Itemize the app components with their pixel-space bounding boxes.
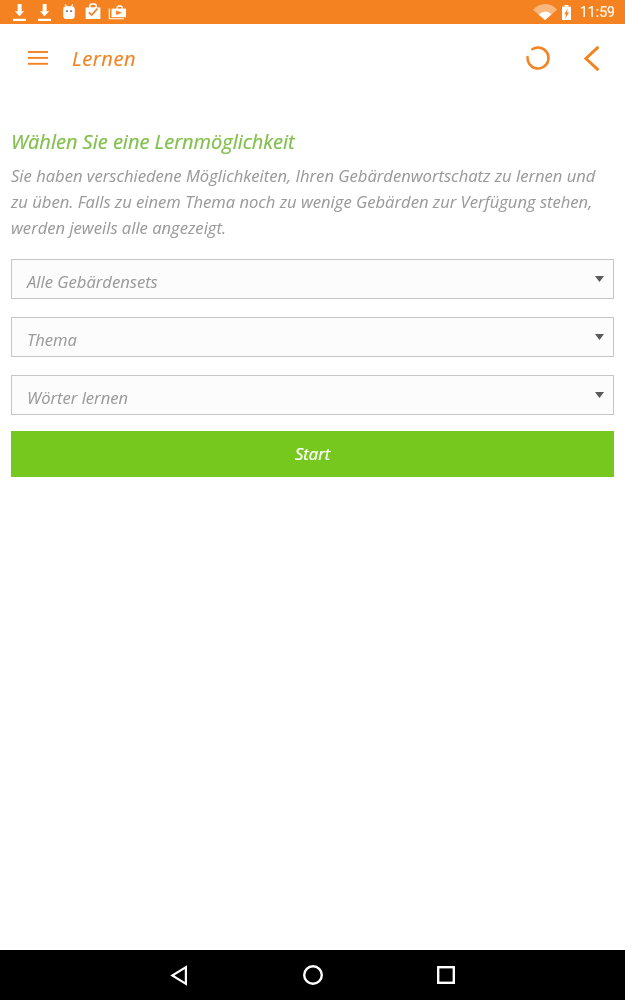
staticText: Thema: [27, 328, 77, 351]
staticText: Alle Gebärdensets: [27, 270, 158, 293]
staticText: Lernen: [72, 45, 137, 72]
staticText: Wählen Sie eine Lernmöglichkeit: [11, 128, 295, 155]
button[interactable]: Back: [134, 950, 224, 1000]
button[interactable]: Back: [572, 34, 612, 82]
button[interactable]: Wörter lernen: [11, 375, 614, 415]
staticText: Wörter lernen: [27, 386, 129, 409]
button[interactable]: Open navigation menu: [14, 44, 61, 72]
button[interactable]: Recent apps: [401, 950, 491, 1000]
button[interactable]: Home: [267, 950, 357, 1000]
button[interactable]: Start: [11, 431, 614, 477]
staticText: Start: [295, 442, 331, 465]
button[interactable]: Refresh: [514, 34, 562, 82]
button[interactable]: Alle Gebärdensets: [11, 259, 614, 299]
staticText: 11:59: [580, 4, 615, 20]
button[interactable]: Thema: [11, 317, 614, 357]
staticText: Sie haben verschiedene Möglichkeiten, Ih…: [11, 161, 614, 239]
